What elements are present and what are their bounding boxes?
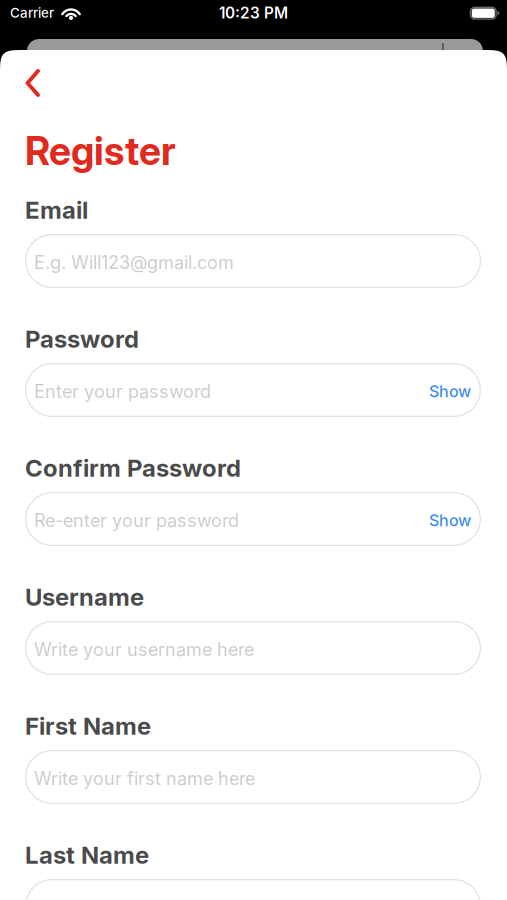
staticText: Email — [25, 195, 88, 224]
staticText: Register — [25, 128, 176, 174]
staticText: 10:23 PM — [219, 4, 288, 22]
button[interactable]: Write your username here — [25, 621, 481, 675]
button[interactable]: Back — [25, 68, 41, 98]
staticText: Last Name — [25, 840, 149, 869]
button[interactable]: Enter your password — [25, 363, 481, 417]
staticText: Username — [25, 582, 144, 611]
staticText: E.g. Will123@gmail.com — [34, 252, 234, 273]
button[interactable]: Write your first name here — [25, 750, 481, 804]
button[interactable]: Write your last name here — [25, 879, 481, 900]
staticText: Confirm Password — [25, 453, 241, 482]
staticText: Write your first name here — [34, 768, 255, 789]
staticText: Show — [429, 511, 471, 530]
staticText: Write your username here — [34, 639, 254, 660]
button[interactable]: E.g. Will123@gmail.com — [25, 234, 481, 288]
staticText: Show — [429, 382, 471, 401]
staticText: Password — [25, 324, 139, 353]
staticText: Enter your password — [34, 381, 211, 402]
staticText: Re-enter your password — [34, 510, 239, 531]
staticText: Carrier — [10, 5, 54, 21]
button[interactable]: Re-enter your password — [25, 492, 481, 546]
staticText: First Name — [25, 711, 151, 740]
